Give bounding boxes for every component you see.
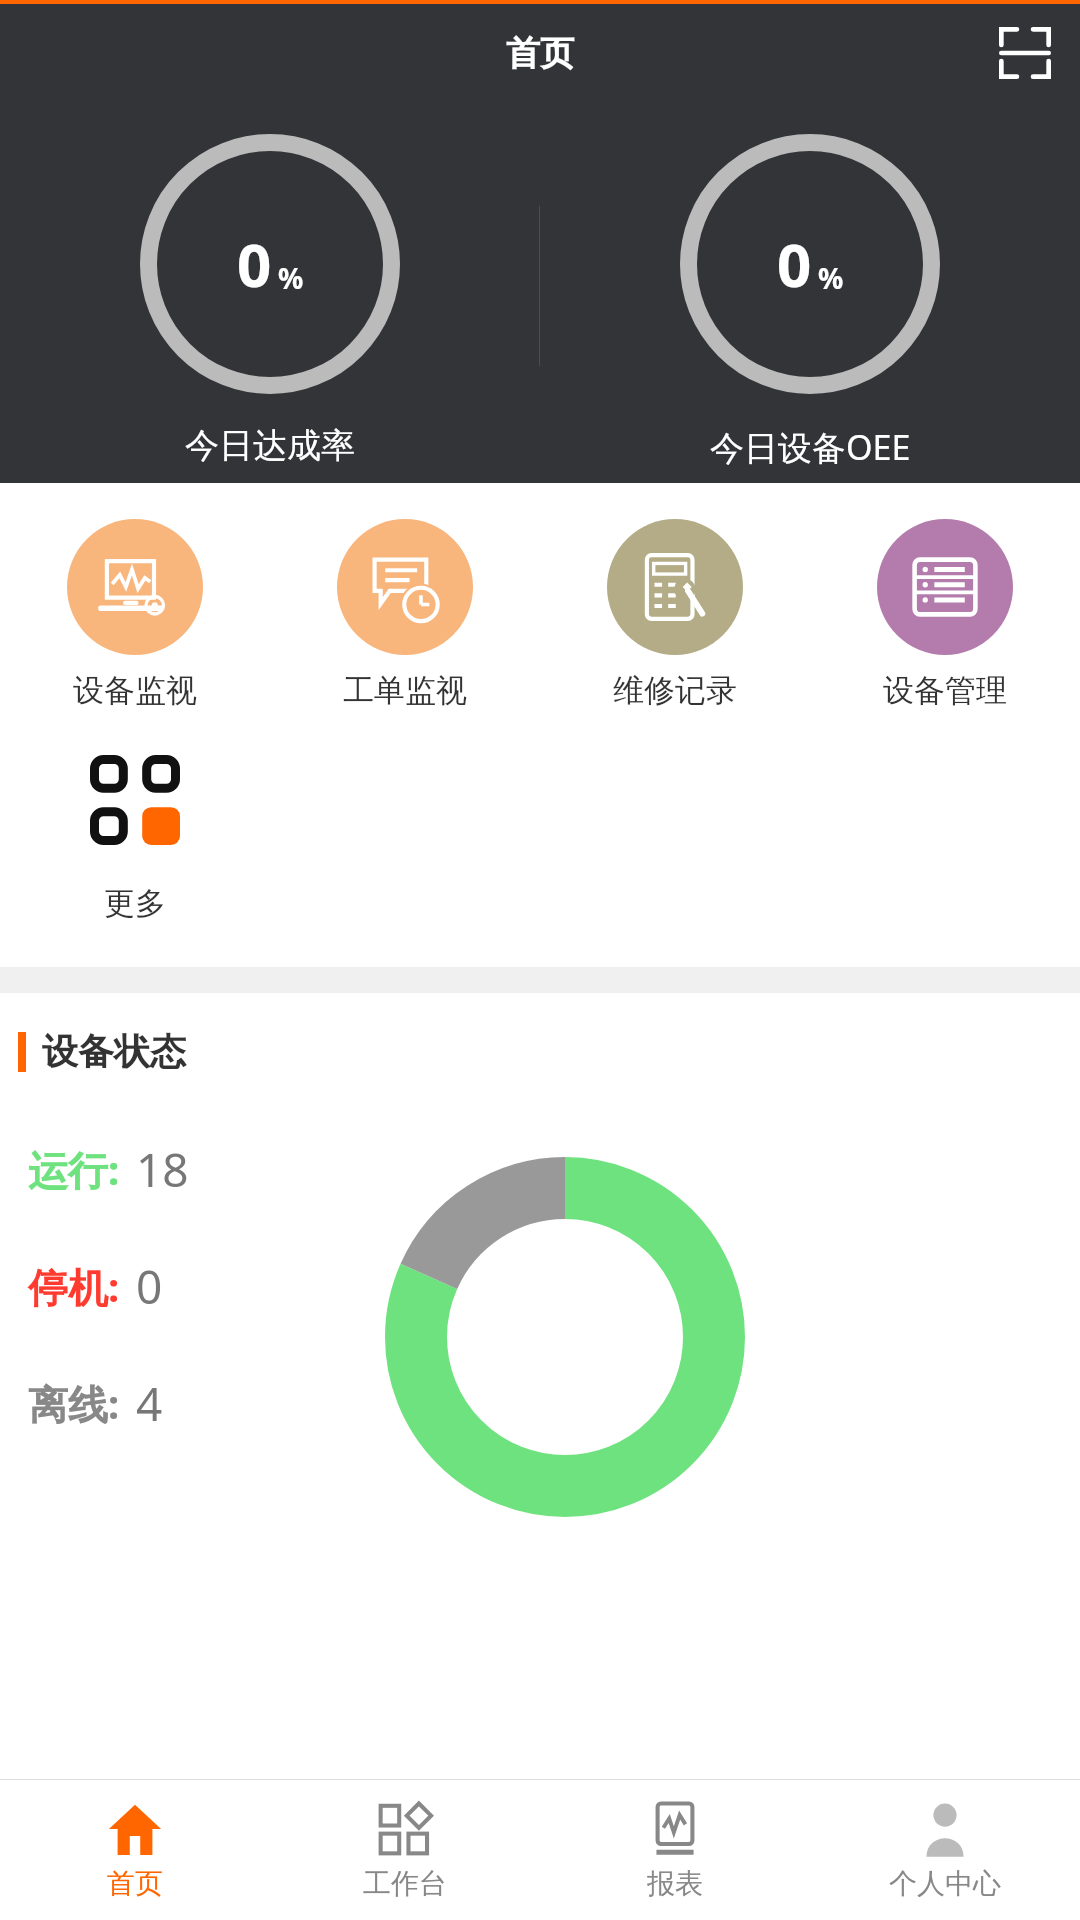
staticText: 0 (136, 1255, 163, 1318)
staticText: 运行: (28, 1142, 120, 1197)
staticText: 0 (777, 223, 812, 305)
staticText: 4 (136, 1372, 163, 1435)
button[interactable]: 个人中心 (810, 1780, 1080, 1920)
staticText: % (818, 259, 844, 297)
staticText: 18 (136, 1138, 189, 1201)
staticText: % (278, 259, 304, 297)
staticText: 设备状态 (42, 1029, 186, 1074)
staticText: 今日达成率 (185, 424, 355, 467)
staticText: 停机: (28, 1259, 120, 1314)
button[interactable]: 更多 (0, 732, 270, 923)
staticText: 工单监视 (343, 671, 467, 710)
button[interactable]: 工单监视 (270, 519, 540, 710)
staticText: 报表 (647, 1866, 703, 1901)
button[interactable]: 工作台 (270, 1780, 540, 1920)
button[interactable]: 设备管理 (810, 519, 1080, 710)
button[interactable]: 报表 (540, 1780, 810, 1920)
staticText: 设备管理 (883, 671, 1007, 710)
staticText: 更多 (104, 884, 166, 923)
button[interactable]: 首页 (0, 1780, 270, 1920)
staticText: 0 (237, 223, 272, 305)
staticText: 首页 (506, 32, 574, 75)
staticText: 设备监视 (73, 671, 197, 710)
staticText: 个人中心 (889, 1866, 1001, 1901)
staticText: 维修记录 (613, 671, 737, 710)
staticText: 今日设备OEE (710, 424, 911, 470)
staticText: 首页 (107, 1866, 163, 1901)
staticText: 离线: (28, 1376, 120, 1431)
staticText: 工作台 (363, 1866, 447, 1901)
button[interactable]: Scan (992, 20, 1058, 86)
button[interactable]: 设备监视 (0, 519, 270, 710)
button[interactable]: 维修记录 (540, 519, 810, 710)
